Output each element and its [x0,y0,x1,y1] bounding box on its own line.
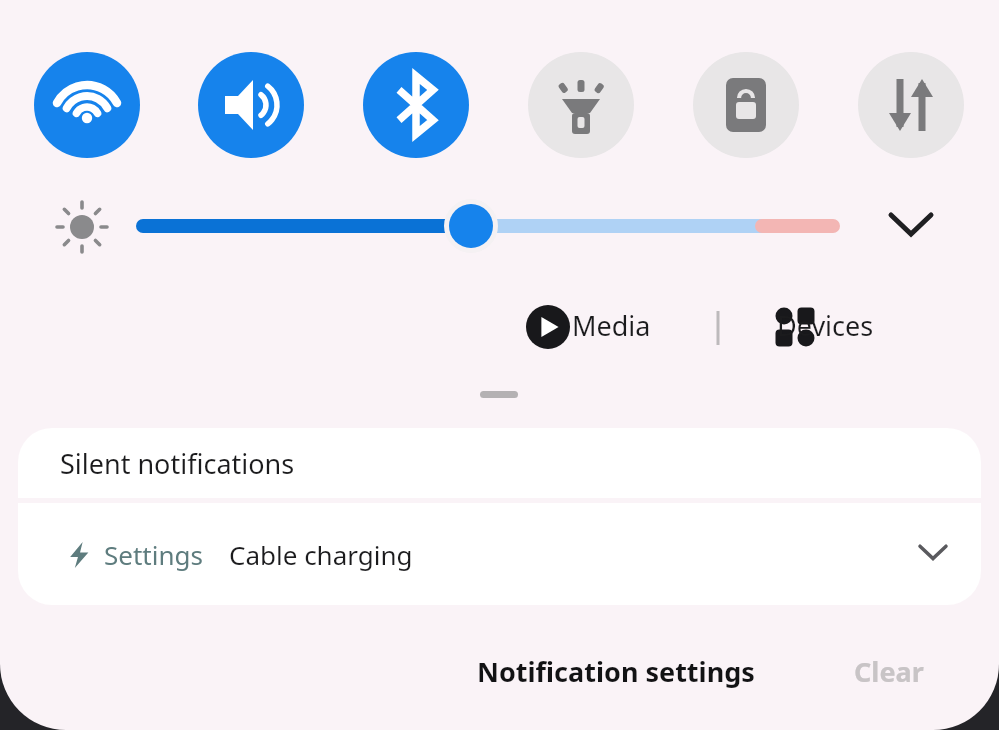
button[interactable]: Mobile data [858,52,964,158]
staticText: Settings [104,537,203,572]
button[interactable]: Devices [719,299,886,352]
button[interactable]: Clear [832,645,946,698]
button[interactable]: Wi-Fi [34,52,140,158]
staticText: Devices [777,307,874,344]
button[interactable]: Bluetooth [363,52,469,158]
button[interactable]: Expand brightness [875,191,947,263]
button[interactable]: Notification settings [455,645,777,698]
button[interactable]: Settings [18,503,981,605]
staticText: Clear [854,653,924,690]
button[interactable]: Lock screen [693,52,799,158]
staticText: Notification settings [477,653,755,690]
staticText: Media [572,307,651,344]
button[interactable]: Silent notifications [18,428,981,498]
staticText: Cable charging [229,537,413,572]
staticText: Silent notifications [60,445,295,482]
button[interactable]: Expand notification [911,532,955,576]
button[interactable]: Flashlight [528,52,634,158]
button[interactable]: Media [516,299,663,352]
button[interactable]: Sound [198,52,304,158]
